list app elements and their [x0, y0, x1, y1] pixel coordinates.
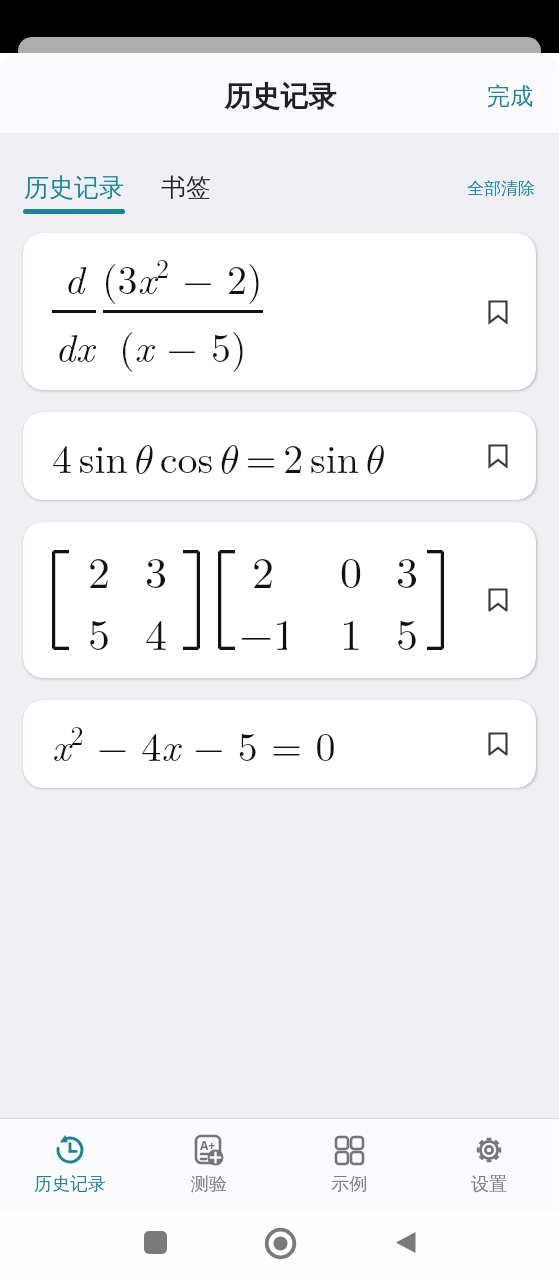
button[interactable]	[264, 1227, 297, 1260]
button[interactable]	[144, 1231, 167, 1254]
staticText: A+	[200, 1137, 216, 1153]
button[interactable]: 4 sin 𝜃 cos 𝜃 = 2 sin 𝜃	[23, 412, 536, 500]
staticText: (3x2 − 2)	[102, 249, 263, 306]
button[interactable]	[394, 1231, 417, 1254]
staticText: 5	[88, 600, 110, 662]
button[interactable]: 书签	[161, 172, 211, 203]
staticText: 4 sin 𝜃 cos 𝜃 = 2 sin 𝜃	[52, 428, 385, 485]
staticText: 历史记录	[224, 79, 336, 114]
staticText: d	[64, 249, 85, 306]
staticText: 3	[396, 538, 418, 600]
staticText: (x − 5)	[119, 317, 247, 374]
staticText: 测验	[191, 1173, 227, 1196]
staticText: 3	[145, 538, 167, 600]
staticText: 1	[340, 600, 362, 662]
staticText: 0	[340, 538, 362, 600]
staticText: 2	[88, 538, 110, 600]
button[interactable]: 示例	[279, 1119, 419, 1210]
button[interactable]: 设置	[419, 1119, 559, 1210]
button[interactable]: 2	[23, 522, 536, 678]
staticText: 2	[252, 538, 274, 600]
button[interactable]: d	[23, 233, 536, 390]
button[interactable]	[487, 299, 509, 325]
button[interactable]: x2 − 4x − 5 = 0	[23, 700, 536, 788]
staticText: 示例	[331, 1173, 367, 1196]
button[interactable]: 完成	[487, 82, 533, 111]
button[interactable]: 历史记录	[23, 172, 125, 214]
staticText: −1	[239, 600, 287, 662]
button[interactable]: 历史记录	[0, 1119, 139, 1210]
staticText: 5	[396, 600, 418, 662]
button[interactable]: A+	[139, 1119, 279, 1210]
staticText: dx	[55, 317, 94, 374]
staticText: 历史记录	[24, 172, 124, 203]
button[interactable]	[487, 731, 509, 757]
staticText: x2 − 4x − 5 = 0	[52, 716, 336, 773]
button[interactable]: 全部清除	[467, 178, 535, 199]
staticText: 4	[145, 600, 167, 662]
staticText: 历史记录	[34, 1173, 106, 1196]
button[interactable]	[487, 587, 509, 613]
button[interactable]	[487, 443, 509, 469]
staticText: 设置	[471, 1173, 507, 1196]
